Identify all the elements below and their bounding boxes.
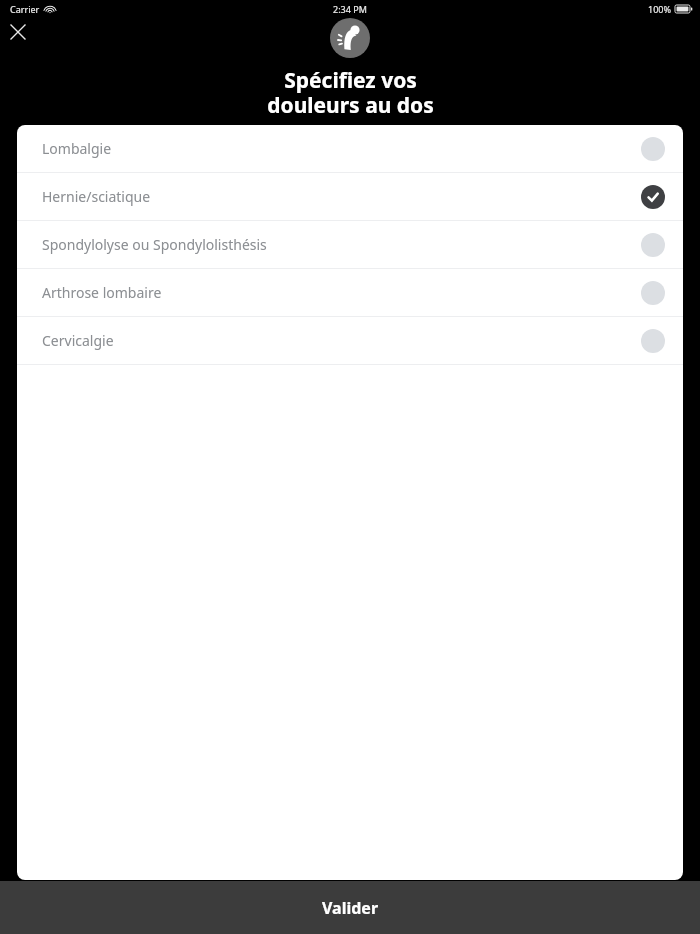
staticText: Arthrose lombaire [42, 283, 641, 302]
staticText: 100% [648, 3, 671, 15]
button[interactable]: Hernie/sciatique [17, 173, 683, 220]
staticText: Carrier [10, 3, 40, 15]
button[interactable]: Close [5, 19, 31, 45]
staticText: Hernie/sciatique [42, 187, 641, 206]
staticText: 2:34 PM [333, 3, 367, 15]
staticText: Lombalgie [42, 139, 641, 158]
staticText: Spondylolyse ou Spondylolisthésis [42, 235, 641, 254]
staticText: Valider [322, 897, 379, 919]
button[interactable]: Arthrose lombaire [17, 269, 683, 316]
staticText: Plusieurs choix possibles [280, 122, 420, 138]
button[interactable]: Valider [0, 881, 700, 934]
button[interactable]: Cervicalgie [17, 317, 683, 364]
button[interactable]: Spondylolyse ou Spondylolisthésis [17, 221, 683, 268]
button[interactable]: Lombalgie [17, 125, 683, 172]
staticText: Cervicalgie [42, 331, 641, 350]
staticText: Spécifiez vos douleurs au dos [267, 66, 434, 119]
